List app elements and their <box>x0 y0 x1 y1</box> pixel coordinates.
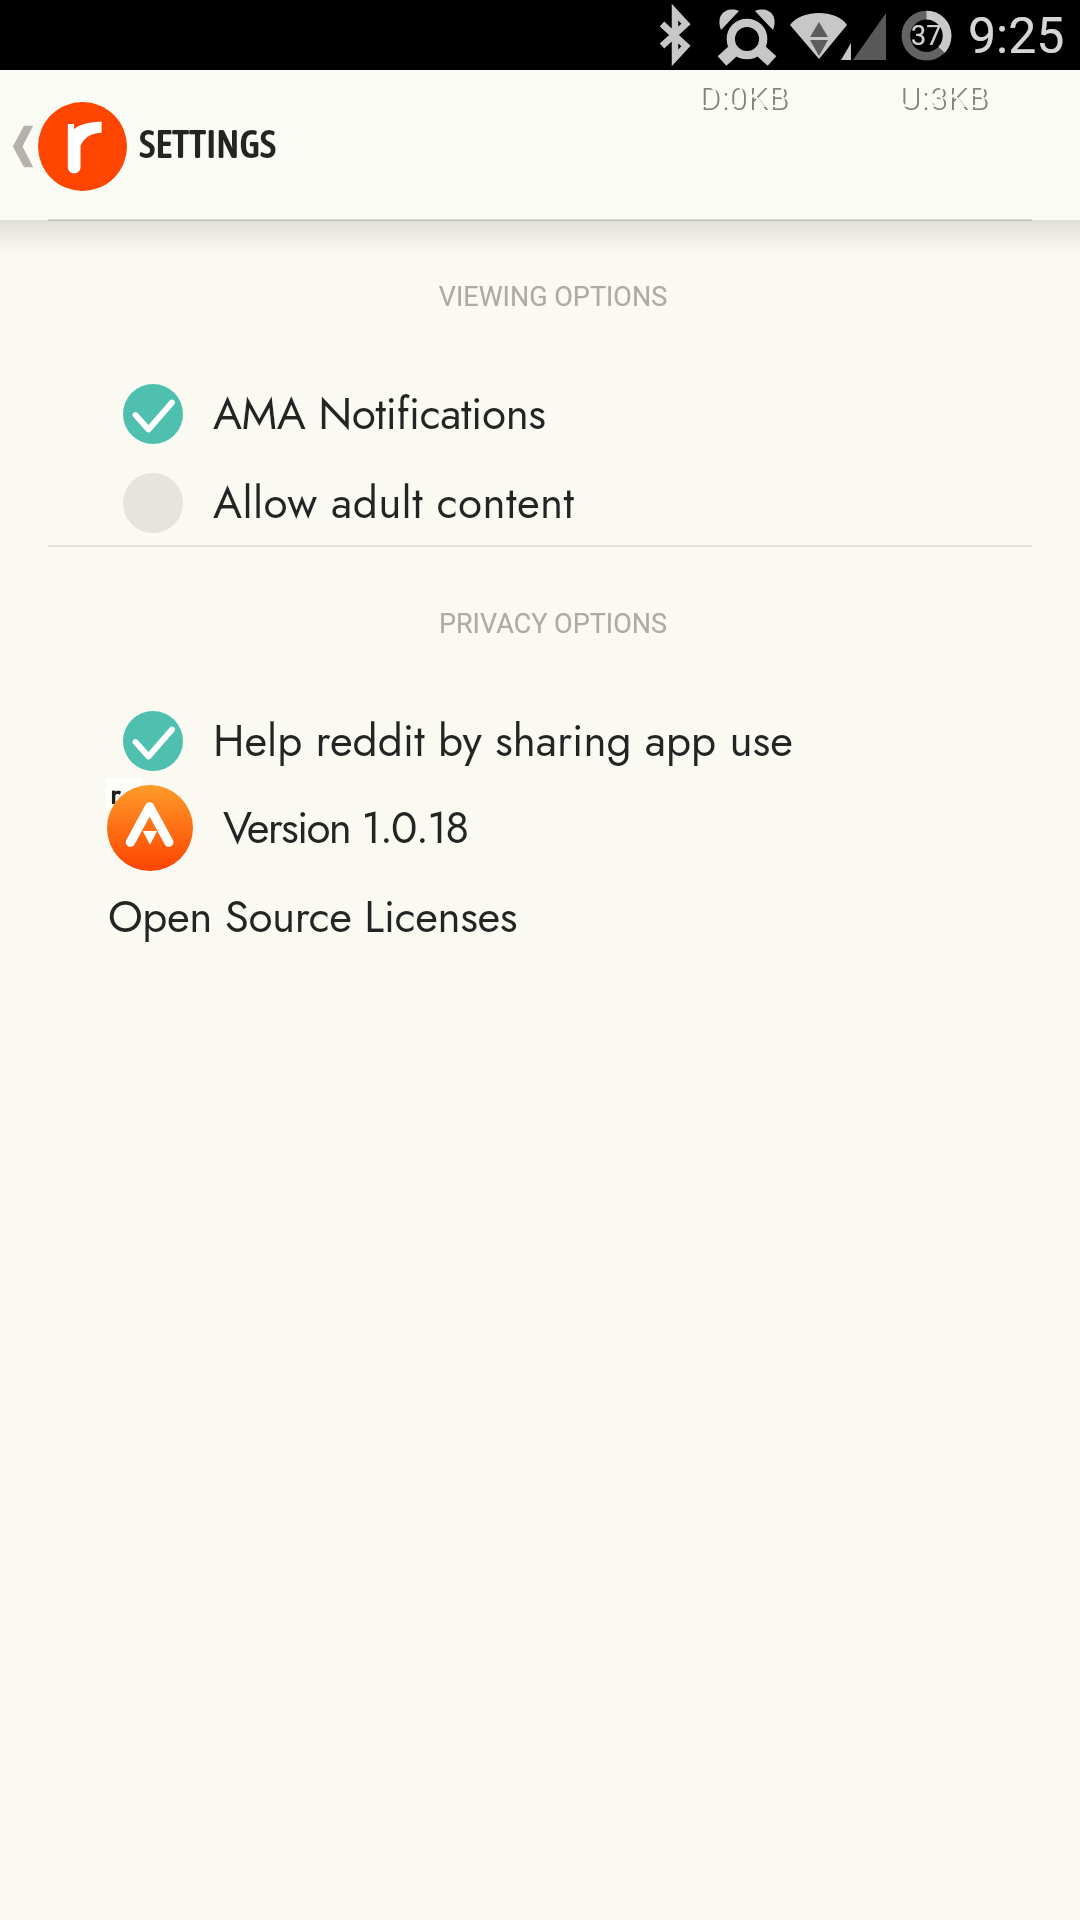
staticText: Help reddit by sharing app use <box>213 709 793 773</box>
staticText: U:3KB <box>901 81 991 117</box>
staticText: Open Source Licenses <box>108 885 518 949</box>
staticText: D:0KB <box>701 81 791 117</box>
staticText: 37 <box>911 20 942 52</box>
staticText: U:3KB <box>898 78 988 114</box>
button[interactable]: AMA Notifications <box>0 369 1080 459</box>
staticText: SETTINGS <box>139 122 277 167</box>
staticText: r <box>110 772 121 804</box>
staticText: VIEWING OPTIONS <box>26 281 1080 313</box>
button[interactable]: Open Source Licenses <box>0 872 1080 962</box>
staticText: Version 1.0.18 <box>223 796 468 860</box>
button[interactable]: reddit home <box>38 102 127 191</box>
staticText: PRIVACY OPTIONS <box>26 608 1080 640</box>
button[interactable]: Help reddit by sharing app use <box>0 696 1080 786</box>
staticText: 9:25 <box>968 7 1065 66</box>
button[interactable]: Allow adult content <box>0 458 1080 548</box>
button[interactable]: Back <box>0 104 66 170</box>
staticText: AMA Notifications <box>213 382 546 446</box>
button[interactable]: Version 1.0.18 <box>0 783 1080 873</box>
staticText: Allow adult content <box>213 471 575 535</box>
staticText: D:0KB <box>698 78 788 114</box>
